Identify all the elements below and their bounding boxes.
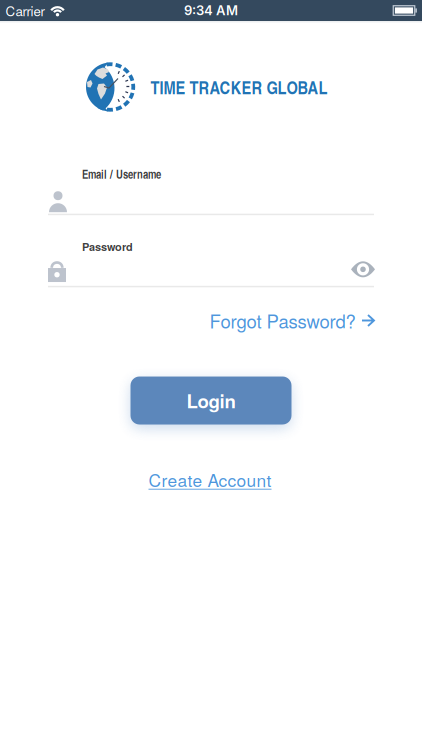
button[interactable]: Forgot Password? [209, 307, 374, 334]
staticText: Forgot Password? [209, 307, 355, 334]
staticText: Login [186, 387, 235, 414]
staticText: 9:34 AM [184, 3, 238, 18]
button[interactable]: Show password [351, 260, 375, 278]
button[interactable]: Email / Username [48, 166, 374, 215]
staticText: Create Account [148, 467, 271, 492]
staticText: Password [82, 239, 133, 254]
button[interactable]: Create Account [148, 467, 271, 492]
staticText: TIME TRACKER GLOBAL [150, 74, 327, 100]
staticText: Carrier [5, 1, 44, 20]
staticText: Email / Username [82, 166, 161, 182]
button[interactable]: Password [48, 239, 374, 287]
button[interactable]: Login [130, 376, 291, 424]
